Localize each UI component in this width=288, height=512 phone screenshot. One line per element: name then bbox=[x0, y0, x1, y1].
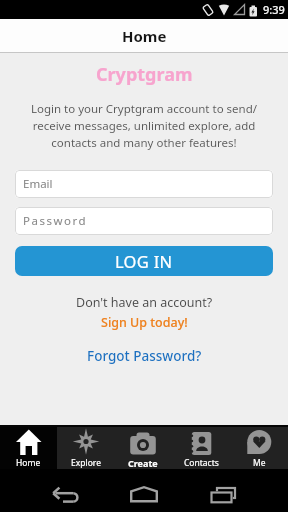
button[interactable]: Forgot Password? bbox=[87, 347, 202, 365]
staticText: Home bbox=[16, 457, 41, 469]
staticText: Explore bbox=[71, 457, 101, 469]
staticText: Home bbox=[122, 26, 167, 46]
button[interactable] bbox=[208, 479, 236, 503]
button[interactable]: Create bbox=[114, 427, 172, 469]
staticText: LOG IN bbox=[115, 250, 173, 272]
button[interactable]: Email bbox=[15, 170, 273, 198]
button[interactable]: LOG IN bbox=[15, 246, 273, 276]
staticText: Email bbox=[23, 176, 53, 192]
button[interactable]: Home bbox=[0, 427, 57, 469]
staticText: Login to your Cryptgram account to send/… bbox=[0, 101, 288, 151]
staticText: Password bbox=[23, 213, 88, 229]
staticText: Me bbox=[253, 457, 266, 469]
staticText: Create bbox=[128, 457, 158, 469]
button[interactable]: Me bbox=[230, 427, 288, 469]
button[interactable]: Explore bbox=[57, 427, 114, 469]
button[interactable] bbox=[52, 479, 80, 503]
button[interactable] bbox=[130, 479, 158, 503]
button[interactable]: Sign Up today! bbox=[101, 314, 188, 331]
button[interactable]: Password bbox=[15, 207, 273, 235]
staticText: Don't have an account? bbox=[76, 294, 213, 311]
button[interactable]: Contacts bbox=[172, 427, 230, 469]
staticText: Cryptgram bbox=[96, 62, 193, 87]
staticText: 9:39 bbox=[263, 2, 285, 17]
staticText: Contacts bbox=[184, 457, 219, 469]
